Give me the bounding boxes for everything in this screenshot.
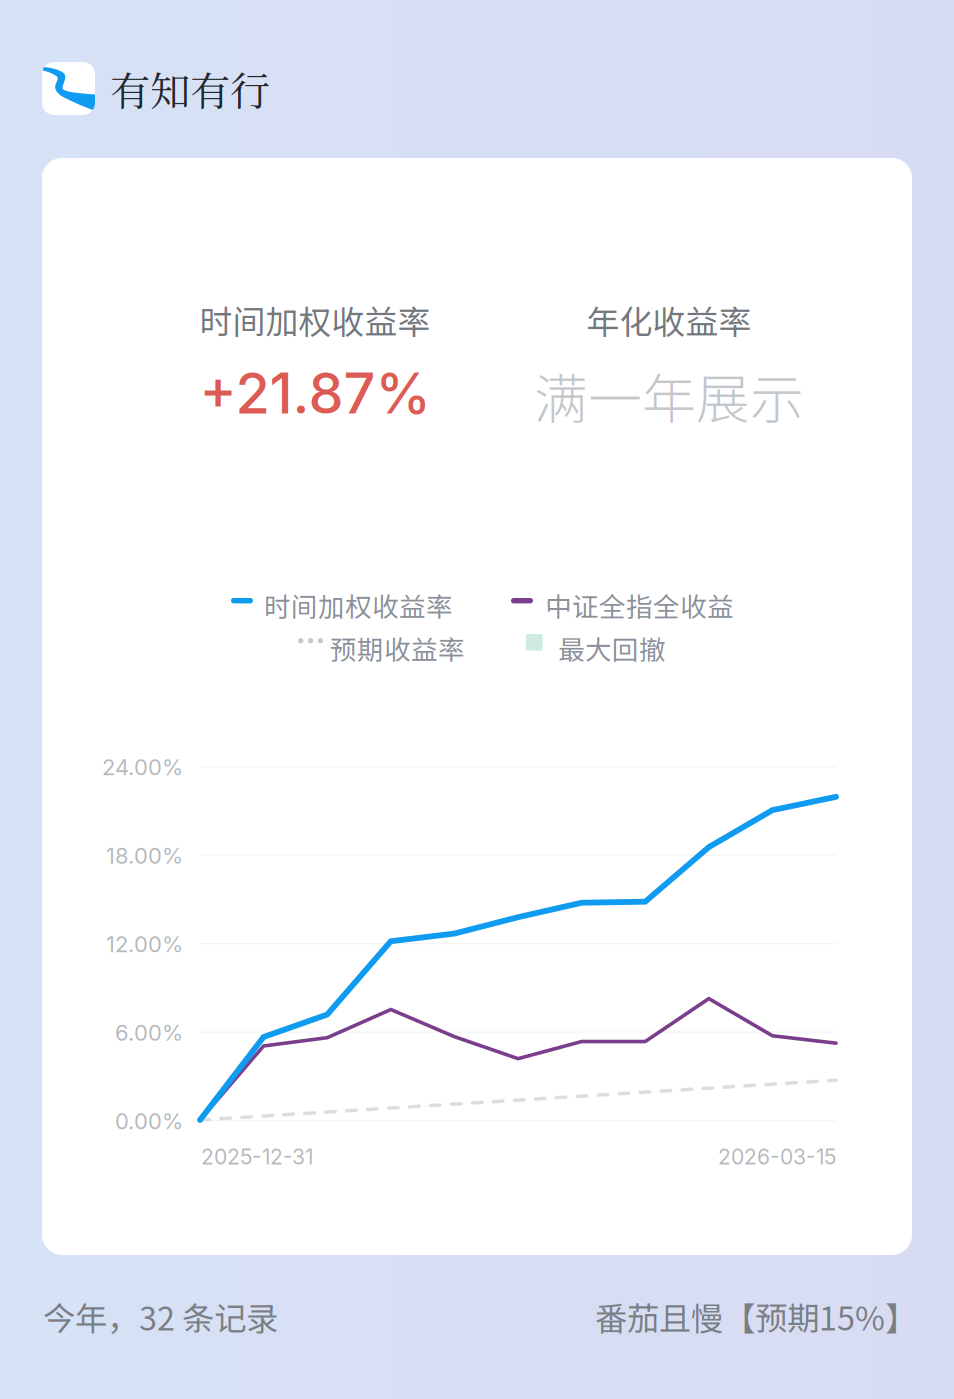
staticText: 0.00% <box>115 1108 183 1135</box>
staticText: 6.00% <box>115 1019 183 1046</box>
staticText: 2026-03-15 <box>718 1144 836 1169</box>
staticText: 12.00% <box>106 931 183 958</box>
staticText: 满一年展示 <box>534 356 804 434</box>
staticText: 24.00% <box>102 754 183 781</box>
staticText: 有知有行 <box>110 60 270 117</box>
staticText: 中证全指全收益 <box>545 586 734 624</box>
button[interactable]: 有知有行 <box>42 62 270 115</box>
button[interactable]: 时间加权收益率 <box>165 296 465 427</box>
button[interactable]: 年化收益率 <box>519 296 819 434</box>
staticText: 今年，32 条记录 <box>43 1293 278 1340</box>
staticText: 时间加权收益率 <box>264 586 453 624</box>
staticText: 2025-12-31 <box>201 1144 313 1169</box>
staticText: 番茄且慢【预期15%】 <box>595 1293 917 1340</box>
staticText: 18.00% <box>106 842 183 869</box>
staticText: 时间加权收益率 <box>199 296 430 343</box>
staticText: +21.87% <box>199 359 430 427</box>
staticText: 预期收益率 <box>330 629 465 667</box>
button[interactable]: 今年，32 条记录 <box>43 1293 278 1340</box>
staticText: 最大回撤 <box>558 629 666 667</box>
button[interactable]: 番茄且慢【预期15%】 <box>517 1293 917 1340</box>
staticText: 年化收益率 <box>586 296 751 343</box>
